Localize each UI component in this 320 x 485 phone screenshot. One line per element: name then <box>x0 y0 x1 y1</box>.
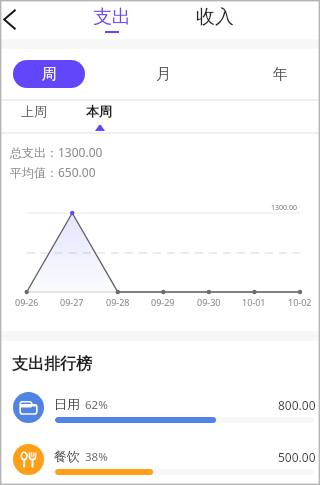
staticText: 10-01 <box>242 296 266 308</box>
staticText: 10-02 <box>288 296 312 308</box>
button[interactable]: 周 <box>13 60 85 88</box>
staticText: 收入 <box>196 5 234 29</box>
staticText: 09-30 <box>197 296 221 308</box>
button[interactable]: 月 <box>133 58 193 90</box>
button[interactable]: 上周 <box>12 100 56 133</box>
staticText: 餐饮 <box>54 448 80 464</box>
staticText: 月 <box>156 65 171 84</box>
staticText: 本周 <box>86 103 112 119</box>
staticText: 800.00 <box>278 397 316 413</box>
button[interactable]: Back <box>0 0 40 39</box>
staticText: 500.00 <box>278 449 316 465</box>
staticText: 09-28 <box>106 296 130 308</box>
staticText: 年 <box>273 65 288 84</box>
staticText: 周 <box>42 65 57 84</box>
button[interactable]: 日用 <box>0 391 320 443</box>
staticText: 09-27 <box>60 296 84 308</box>
staticText: 日用 <box>54 396 80 412</box>
staticText: 支出 <box>93 5 131 29</box>
staticText: 支出排行榜 <box>12 354 92 374</box>
staticText: 总支出：1300.00 <box>10 144 103 160</box>
staticText: 平均值：650.00 <box>10 164 96 180</box>
staticText: 1300.00 <box>271 203 297 213</box>
button[interactable]: 收入 <box>175 0 255 39</box>
button[interactable]: 年 <box>250 58 310 90</box>
staticText: 09-29 <box>151 296 175 308</box>
button[interactable]: 本周 <box>76 100 121 133</box>
staticText: 62% <box>85 397 108 413</box>
staticText: 09-26 <box>15 296 39 308</box>
staticText: 上周 <box>21 103 47 119</box>
button[interactable]: 支出 <box>72 0 152 39</box>
staticText: 38% <box>85 449 108 465</box>
button[interactable]: 餐饮 <box>0 443 320 485</box>
